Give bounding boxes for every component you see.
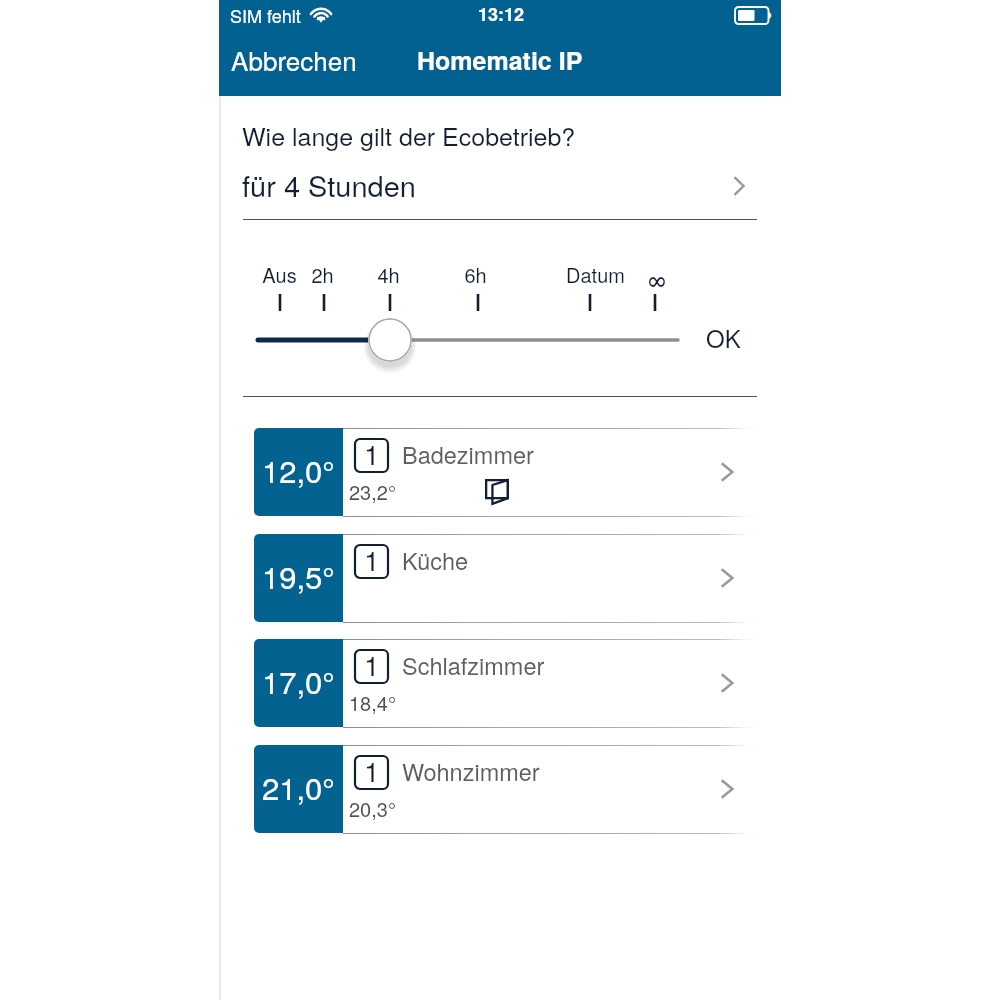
staticText: 20,3° [349,794,396,823]
other: Details zu Badezimmer [720,462,734,482]
staticText: 17,0° [262,658,335,702]
button[interactable]: 12,0° [219,428,781,517]
staticText: 1 [364,539,380,572]
staticText: 4h [377,260,400,289]
staticText: 23,2° [349,477,396,506]
other: Details zu Küche [720,568,734,588]
button[interactable]: OK [702,316,745,358]
staticText: 13:12 [478,1,525,27]
staticText: 1 [364,433,380,466]
staticText: Wohnzimmer [402,754,540,788]
staticText: 2h [311,260,334,289]
other: Fenster offen [485,479,509,505]
staticText: OK [706,320,741,354]
other: Dauer auswählen [733,176,745,196]
staticText: Küche [402,543,469,577]
staticText: 19,5° [262,553,335,597]
button[interactable]: Abbrechen [219,36,373,88]
button[interactable]: 21,0° [219,745,781,834]
staticText: 21,0° [262,764,335,808]
staticText: Homematic IP [417,42,583,78]
other: Akku [735,7,772,24]
staticText: 12,0° [262,447,335,491]
staticText: 1 [364,750,380,783]
staticText: Abbrechen [231,41,357,78]
other: Details zu Wohnzimmer [720,779,734,799]
button[interactable]: Dauer wählen [368,318,412,362]
staticText: Aus [262,260,297,289]
staticText: 18,4° [349,688,396,717]
staticText: Schlafzimmer [402,648,545,682]
button[interactable]: für 4 Stunden [219,166,781,210]
button[interactable]: 19,5° [219,534,781,623]
other: Details zu Schlafzimmer [720,673,734,693]
staticText: Datum [566,260,625,289]
staticText: 1 [364,644,380,677]
other: WLAN [311,6,331,22]
staticText: SIM fehlt [230,2,301,28]
staticText: 6h [464,260,487,289]
button[interactable]: 17,0° [219,639,781,728]
staticText: Badezimmer [402,437,534,471]
staticText: ∞ [648,260,666,294]
staticText: Wie lange gilt der Ecobetrieb? [242,117,576,153]
staticText: für 4 Stunden [242,164,416,206]
